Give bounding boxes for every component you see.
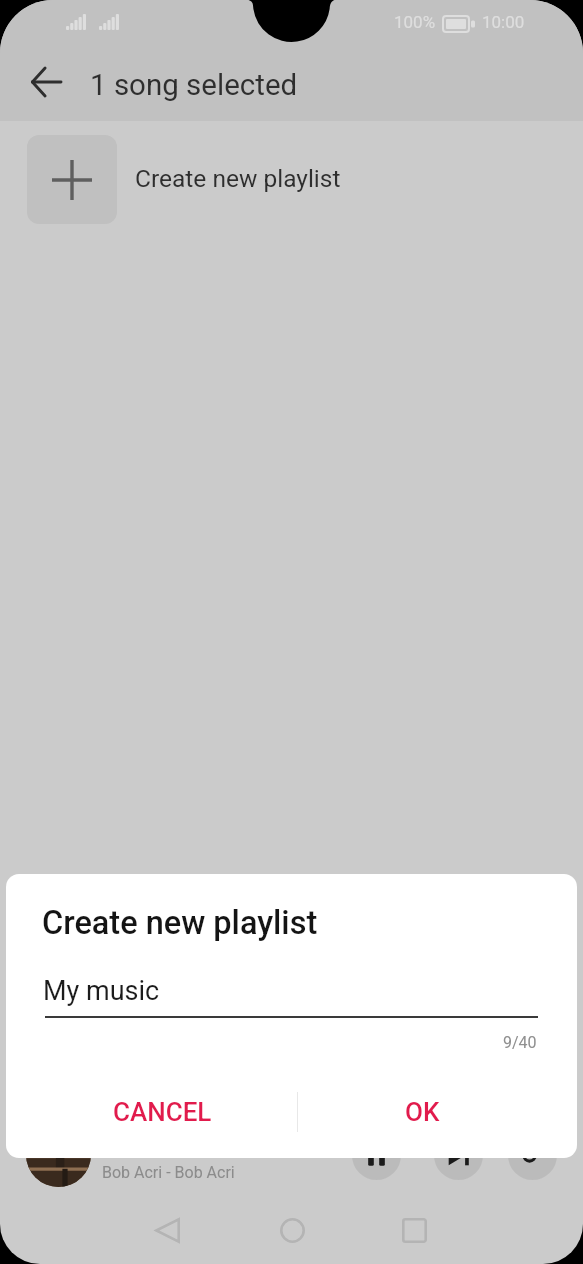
button[interactable]: Pause [352, 1131, 401, 1180]
button[interactable]: Recent apps [386, 1202, 442, 1258]
button[interactable]: OK [300, 1085, 545, 1139]
staticText: 10:00 [482, 12, 525, 32]
button[interactable]: Home [264, 1202, 320, 1258]
button[interactable]: Next [434, 1131, 483, 1180]
button[interactable]: Playlist [508, 1131, 557, 1180]
staticText: Bob Acri - Bob Acri [102, 1163, 235, 1182]
staticText: My music [43, 975, 160, 1007]
button[interactable]: Album art [26, 1122, 91, 1187]
button[interactable]: Back [16, 52, 76, 112]
staticText: 9/40 [503, 1033, 537, 1052]
button[interactable]: CANCEL [40, 1085, 285, 1139]
staticText: OK [405, 1097, 440, 1127]
staticText: 1 song selected [90, 68, 298, 103]
button[interactable]: Back [139, 1202, 195, 1258]
button[interactable]: Create new playlist [0, 121, 583, 238]
staticText: Create new playlist [42, 904, 318, 942]
staticText: CANCEL [113, 1097, 212, 1127]
staticText: Create new playlist [135, 164, 341, 193]
staticText: 100% [394, 12, 436, 32]
